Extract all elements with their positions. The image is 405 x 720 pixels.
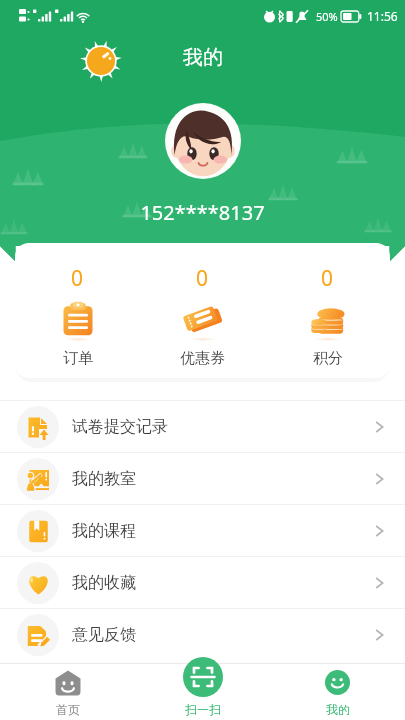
staticText: 试卷提交记录 [72,417,168,437]
staticText: 152****8137 [0,199,405,223]
button[interactable]: 0 [265,243,390,378]
staticText: 我的课程 [72,521,136,541]
staticText: 积分 [313,349,343,368]
button[interactable]: 我的课程 [0,505,405,556]
staticText: 0 [321,264,334,293]
staticText: 订单 [63,349,93,368]
button[interactable]: 0 [15,243,140,378]
staticText: 我的教室 [72,469,136,489]
staticText: 我的 [183,45,223,70]
staticText: 11:56 [367,8,398,24]
staticText: 0 [196,264,209,293]
button[interactable]: 试卷提交记录 [0,401,405,452]
staticText: 扫一扫 [185,702,221,717]
staticText: 我的收藏 [72,573,136,593]
button[interactable]: 扫一扫 [135,663,270,720]
other: Sun [78,38,124,84]
button[interactable]: 我的教室 [0,453,405,504]
button[interactable]: 0 [140,243,265,378]
button[interactable]: 意见反馈 [0,609,405,660]
button[interactable]: 我的 [270,663,405,720]
staticText: 我的 [326,702,350,717]
staticText: 0 [71,264,84,293]
staticText: 意见反馈 [72,625,136,645]
staticText: 50% [316,9,338,24]
staticText: 优惠券 [180,349,225,368]
staticText: 首页 [56,702,80,717]
button[interactable]: 首页 [0,663,135,720]
button[interactable]: 我的收藏 [0,557,405,608]
